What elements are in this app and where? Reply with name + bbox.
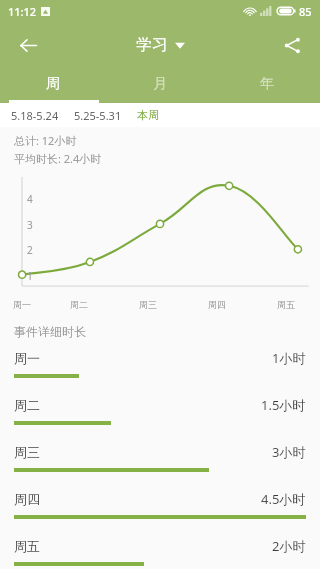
staticText: 周	[46, 75, 60, 93]
button[interactable]: 5.25-5.31	[73, 108, 123, 123]
staticText: 5.18-5.24	[11, 108, 59, 123]
staticText: 4	[27, 192, 33, 206]
staticText: 周二	[14, 397, 40, 413]
staticText: 3小时	[272, 443, 306, 461]
staticText: 2小时	[272, 537, 306, 555]
staticText: 年	[260, 75, 274, 93]
staticText: 5.25-5.31	[74, 108, 122, 123]
button[interactable]: 周	[0, 68, 106, 100]
staticText: 85	[299, 4, 312, 19]
staticText: 本周	[137, 108, 159, 122]
staticText: 2	[27, 243, 33, 257]
button[interactable]: Back	[10, 27, 46, 63]
staticText: 1.5小时	[261, 396, 306, 414]
staticText: 平均时长: 2.4小时	[14, 151, 102, 166]
button[interactable]: 5.18-5.24	[10, 108, 60, 123]
staticText: 1	[27, 269, 33, 283]
staticText: 周二	[70, 299, 88, 310]
staticText: 月	[153, 75, 167, 93]
button[interactable]: Share	[274, 27, 310, 63]
button[interactable]: 本周	[136, 108, 160, 122]
button[interactable]: 周一	[0, 349, 320, 396]
staticText: 周五	[14, 538, 40, 554]
button[interactable]: 周二	[0, 396, 320, 443]
staticText: 学习	[136, 35, 168, 55]
staticText: 1小时	[272, 349, 306, 367]
button[interactable]: 周五	[0, 537, 320, 569]
staticText: 周三	[14, 444, 40, 460]
staticText: 3	[27, 218, 33, 232]
staticText: 周四	[14, 491, 40, 507]
staticText: 11:12	[8, 4, 37, 19]
staticText: 事件详细时长	[14, 324, 86, 339]
button[interactable]: 年	[213, 68, 320, 100]
staticText: 总计: 12小时	[14, 133, 77, 148]
button[interactable]: 周四	[0, 490, 320, 537]
staticText: 周四	[208, 299, 226, 310]
staticText: 周五	[277, 299, 295, 310]
button[interactable]: 学习	[136, 35, 185, 55]
button[interactable]: 周三	[0, 443, 320, 490]
staticText: 周一	[14, 350, 40, 366]
staticText: 周三	[139, 299, 157, 310]
staticText: 4.5小时	[261, 490, 306, 508]
button[interactable]: 月	[106, 68, 213, 100]
staticText: 周一	[13, 299, 31, 310]
